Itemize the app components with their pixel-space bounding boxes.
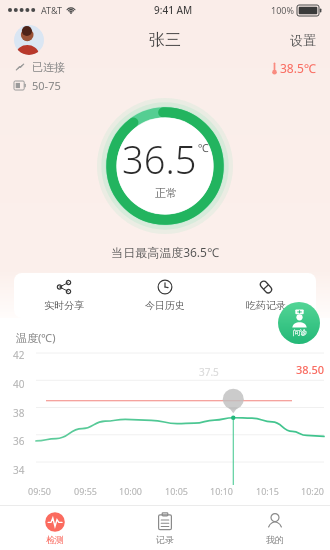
- staticText: ℃: [198, 140, 209, 155]
- staticText: 10:10: [210, 485, 234, 497]
- staticText: 38.5℃: [280, 60, 316, 76]
- staticText: 38: [13, 406, 25, 420]
- staticText: 张三: [149, 30, 181, 50]
- staticText: 设置: [290, 32, 316, 48]
- staticText: 09:55: [74, 485, 98, 497]
- staticText: 50-75: [32, 78, 61, 93]
- button[interactable]: 记录: [110, 506, 220, 550]
- staticText: 34: [13, 463, 25, 477]
- staticText: 38.50: [296, 362, 325, 377]
- staticText: 检测: [46, 534, 64, 545]
- button[interactable]: 检测: [0, 506, 110, 550]
- staticText: 100%: [271, 4, 294, 16]
- staticText: 问诊: [293, 328, 307, 337]
- button[interactable]: Profile avatar: [14, 25, 44, 55]
- staticText: 记录: [156, 534, 174, 545]
- button[interactable]: 实时分享: [14, 273, 114, 318]
- button[interactable]: 今日历史: [114, 273, 215, 318]
- staticText: 我的: [266, 534, 284, 545]
- staticText: 36.5: [122, 133, 197, 185]
- staticText: 温度(℃): [16, 330, 56, 345]
- staticText: 正常: [155, 186, 177, 200]
- staticText: 37.5: [199, 365, 219, 379]
- staticText: AT&T: [41, 4, 62, 16]
- staticText: 今日历史: [145, 299, 185, 312]
- staticText: 当日最高温度36.5℃: [0, 244, 330, 260]
- staticText: 10:15: [256, 485, 280, 497]
- staticText: 42: [13, 348, 25, 362]
- button[interactable]: 吃药记录: [215, 273, 316, 318]
- staticText: 09:50: [28, 485, 52, 497]
- button[interactable]: 问诊 consult doctor: [278, 302, 320, 344]
- staticText: 吃药记录: [246, 299, 286, 312]
- staticText: 40: [13, 377, 25, 391]
- staticText: 10:05: [165, 485, 189, 497]
- staticText: 实时分享: [44, 299, 84, 312]
- staticText: 36: [13, 434, 25, 448]
- staticText: 10:00: [119, 485, 143, 497]
- staticText: 10:20: [301, 485, 325, 497]
- staticText: 已连接: [32, 60, 65, 74]
- button[interactable]: 设置: [276, 24, 330, 56]
- staticText: 9:41 AM: [154, 3, 193, 17]
- button[interactable]: 我的: [220, 506, 330, 550]
